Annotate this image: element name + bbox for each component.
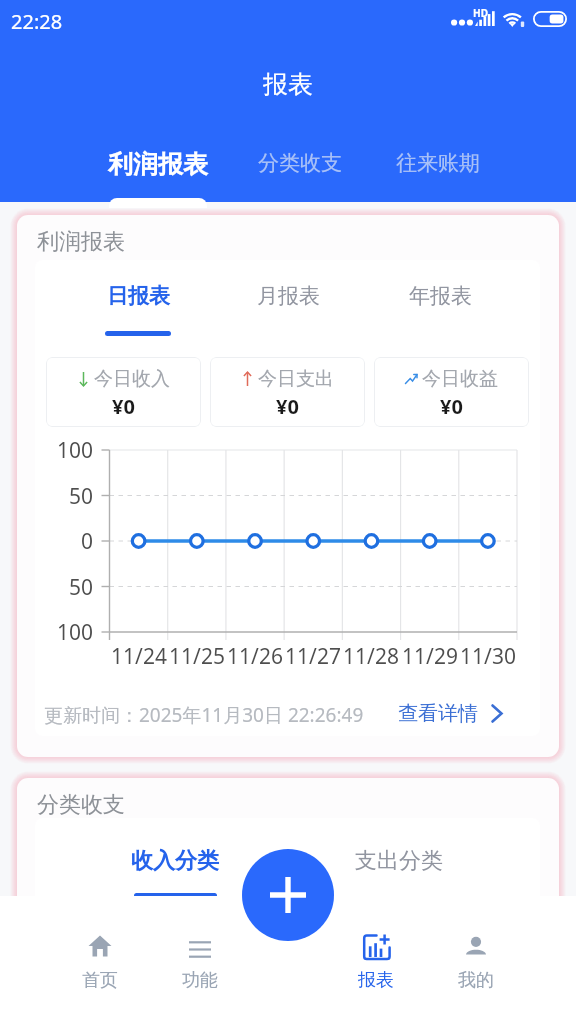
staticText: 100: [33, 618, 93, 647]
button[interactable]: 月报表: [230, 275, 346, 337]
button[interactable]: 我的: [431, 924, 521, 996]
staticText: 50: [33, 573, 93, 602]
button[interactable]: 利润报表: [78, 135, 238, 191]
staticText: 我的: [458, 969, 494, 992]
button[interactable]: 今日收益: [374, 357, 529, 427]
staticText: 往来账期: [396, 150, 480, 176]
staticText: 分类收支: [37, 791, 125, 819]
button[interactable]: 查看详情: [398, 701, 503, 726]
staticText: 11/25: [162, 642, 232, 671]
staticText: 分类收支: [258, 150, 342, 176]
staticText: 0: [33, 527, 93, 556]
staticText: 月报表: [257, 283, 320, 309]
button[interactable]: 报表: [331, 924, 421, 996]
button[interactable]: 支出分类: [341, 839, 457, 901]
staticText: 22:28: [11, 8, 63, 35]
staticText: ¥0: [276, 393, 299, 420]
button[interactable]: 功能: [155, 924, 245, 996]
button[interactable]: 往来账期: [358, 136, 518, 192]
button[interactable]: 分类收支: [220, 136, 380, 192]
staticText: 收入分类: [131, 847, 219, 875]
staticText: 报表: [358, 969, 394, 992]
staticText: 50: [33, 482, 93, 511]
staticText: 功能: [182, 969, 218, 992]
button[interactable]: 收入分类: [117, 839, 233, 901]
button[interactable]: 首页: [55, 924, 145, 996]
staticText: 利润报表: [37, 228, 125, 256]
staticText: 支出分类: [355, 847, 443, 875]
staticText: 11/26: [220, 642, 290, 671]
button[interactable]: 今日收入: [46, 357, 201, 427]
staticText: 利润报表: [108, 149, 208, 180]
staticText: ¥0: [112, 393, 135, 420]
staticText: 报表: [263, 69, 313, 100]
staticText: 11/30: [453, 642, 523, 671]
button[interactable]: 日报表: [80, 275, 196, 337]
staticText: ¥0: [440, 393, 463, 420]
staticText: 首页: [82, 969, 118, 992]
staticText: 今日支出: [258, 367, 334, 391]
staticText: 今日收入: [94, 367, 170, 391]
staticText: 年报表: [409, 283, 472, 309]
staticText: 11/27: [278, 642, 348, 671]
staticText: 100: [33, 436, 93, 465]
button[interactable]: 今日支出: [210, 357, 365, 427]
staticText: 更新时间：2025年11月30日 22:26:49: [44, 702, 364, 728]
staticText: 11/24: [104, 642, 174, 671]
staticText: 11/28: [336, 642, 406, 671]
staticText: 日报表: [107, 283, 170, 309]
button[interactable]: Add: [242, 849, 334, 941]
staticText: 11/29: [395, 642, 465, 671]
staticText: HD: [473, 6, 488, 20]
button[interactable]: 年报表: [382, 275, 498, 337]
staticText: 查看详情: [398, 701, 478, 726]
staticText: 今日收益: [422, 367, 498, 391]
